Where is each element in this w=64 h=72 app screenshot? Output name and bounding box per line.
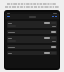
button[interactable]: Option	[44, 37, 50, 39]
button[interactable]: Option	[44, 22, 50, 24]
button[interactable]: Option	[7, 45, 57, 49]
button[interactable]: Option	[7, 30, 57, 34]
button[interactable]: Option	[44, 52, 50, 54]
button[interactable]: Back	[7, 16, 10, 17]
button[interactable]: Option	[7, 51, 57, 55]
button[interactable]: Option	[51, 46, 56, 48]
button[interactable]: Option	[7, 21, 57, 28]
button[interactable]: Option	[51, 31, 56, 33]
button[interactable]: Option	[7, 36, 57, 43]
